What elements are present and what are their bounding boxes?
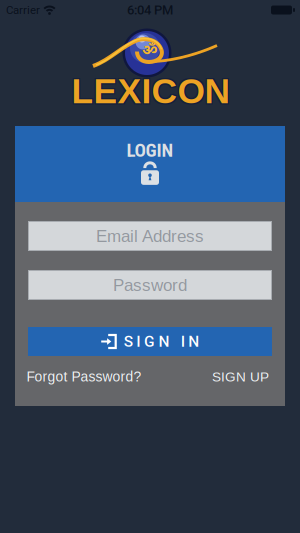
staticText: 6:04 PM	[127, 2, 173, 18]
staticText: SIGN IN	[124, 332, 199, 350]
staticText: LOGIN	[126, 139, 173, 161]
button[interactable]: Password	[28, 270, 272, 300]
button[interactable]: SIGN UP	[212, 369, 269, 384]
staticText: LEXICON	[71, 71, 230, 111]
staticText: Password	[113, 275, 187, 294]
staticText: Carrier	[6, 3, 40, 17]
staticText: LEXICON	[70, 72, 229, 112]
staticText: ॐ	[142, 42, 158, 62]
staticText: LEXICON	[73, 72, 232, 112]
staticText: LEXICON	[73, 70, 232, 110]
button[interactable]: Forgot Password?	[26, 369, 141, 384]
staticText: SIGN UP	[212, 369, 269, 384]
staticText: Email Address	[96, 226, 204, 245]
button[interactable]: SIGN IN	[28, 327, 272, 356]
button[interactable]: Email Address	[28, 221, 272, 251]
staticText: Forgot Password?	[26, 369, 141, 384]
staticText: LEXICON	[70, 70, 229, 110]
